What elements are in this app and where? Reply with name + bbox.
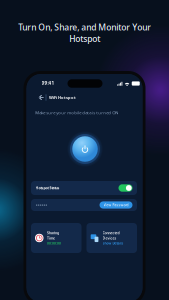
button[interactable]: View Password: [99, 201, 132, 209]
staticText: 09:41: [41, 80, 54, 86]
button[interactable]: Hotspot Status: [31, 181, 137, 195]
staticText: ••••••: [35, 202, 47, 208]
button[interactable]: Back: [35, 91, 47, 104]
button[interactable]: Connected: [86, 223, 137, 253]
staticText: View Password: [103, 203, 128, 207]
button[interactable]: Power: [67, 131, 103, 167]
staticText: WiFi Hotspot: [49, 95, 76, 100]
staticText: Devices: [102, 236, 116, 240]
staticText: Show Details: [102, 241, 123, 245]
staticText: Make sure your mobile data is turned ON: [35, 110, 118, 115]
button[interactable]: Sharing: [31, 223, 81, 253]
staticText: Time: [47, 236, 55, 240]
staticText: 00:00:00: [47, 241, 61, 245]
staticText: Sharing: [47, 230, 59, 235]
staticText: Turn On, Share, and Monitor Your Hotspot: [18, 21, 151, 45]
staticText: Connected: [102, 230, 119, 235]
staticText: Hotspot Status: [35, 186, 59, 190]
